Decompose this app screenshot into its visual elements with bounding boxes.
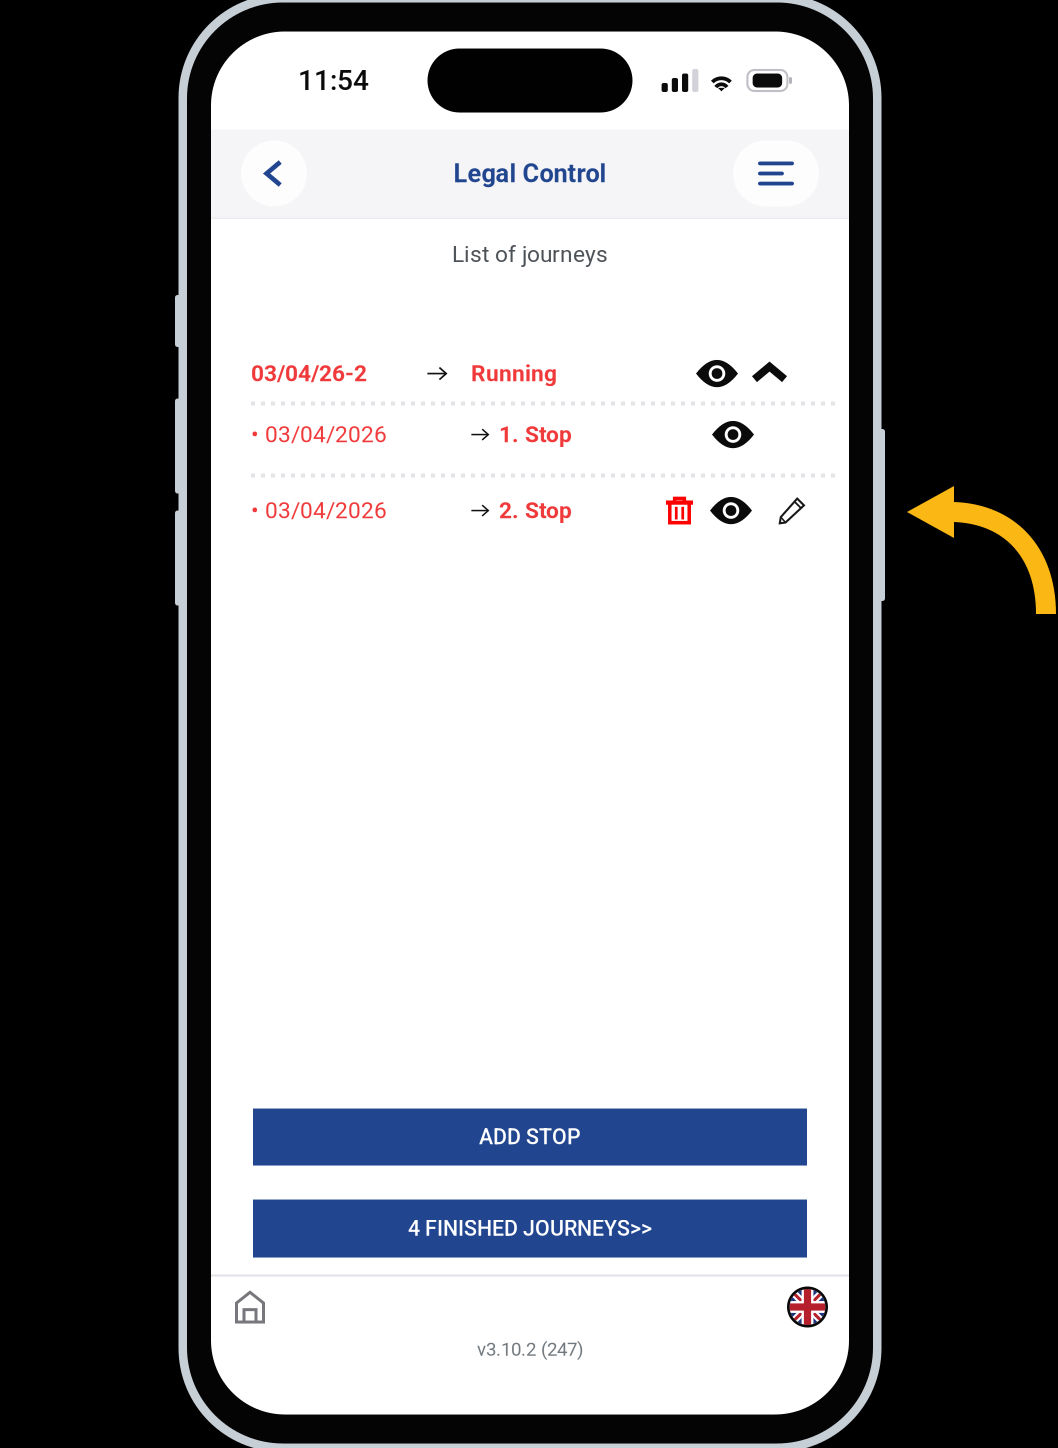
button[interactable]: Collapse journey xyxy=(752,356,787,391)
button[interactable]: 4 FINISHED JOURNEYS>> xyxy=(253,1199,807,1257)
button[interactable]: View stop 1 xyxy=(712,422,754,447)
staticText: 11:54 xyxy=(298,64,369,97)
staticText: • 03/04/2026 xyxy=(251,497,387,524)
staticText: Legal Control xyxy=(453,159,606,188)
staticText: 1. Stop xyxy=(499,421,572,448)
staticText: Running xyxy=(471,360,557,387)
button[interactable]: Delete stop 2 xyxy=(666,497,693,524)
staticText: 4 FINISHED JOURNEYS>> xyxy=(408,1216,652,1241)
staticText: 2. Stop xyxy=(499,497,572,524)
staticText: • 03/04/2026 xyxy=(251,421,387,448)
button[interactable]: Edit stop 2 xyxy=(779,498,805,524)
button[interactable]: Menu xyxy=(733,140,819,206)
staticText: v3.10.2 (247) xyxy=(477,1338,583,1360)
button[interactable]: Change language xyxy=(787,1286,828,1327)
button[interactable]: View stop 2 xyxy=(710,498,752,523)
button[interactable]: View journey xyxy=(696,361,738,386)
button[interactable]: Home xyxy=(235,1290,265,1323)
button[interactable]: Back xyxy=(241,140,307,206)
staticText: ADD STOP xyxy=(479,1124,581,1149)
staticText: 03/04/26-2 xyxy=(251,360,367,387)
staticText: List of journeys xyxy=(452,241,608,268)
button[interactable]: ADD STOP xyxy=(253,1108,807,1165)
